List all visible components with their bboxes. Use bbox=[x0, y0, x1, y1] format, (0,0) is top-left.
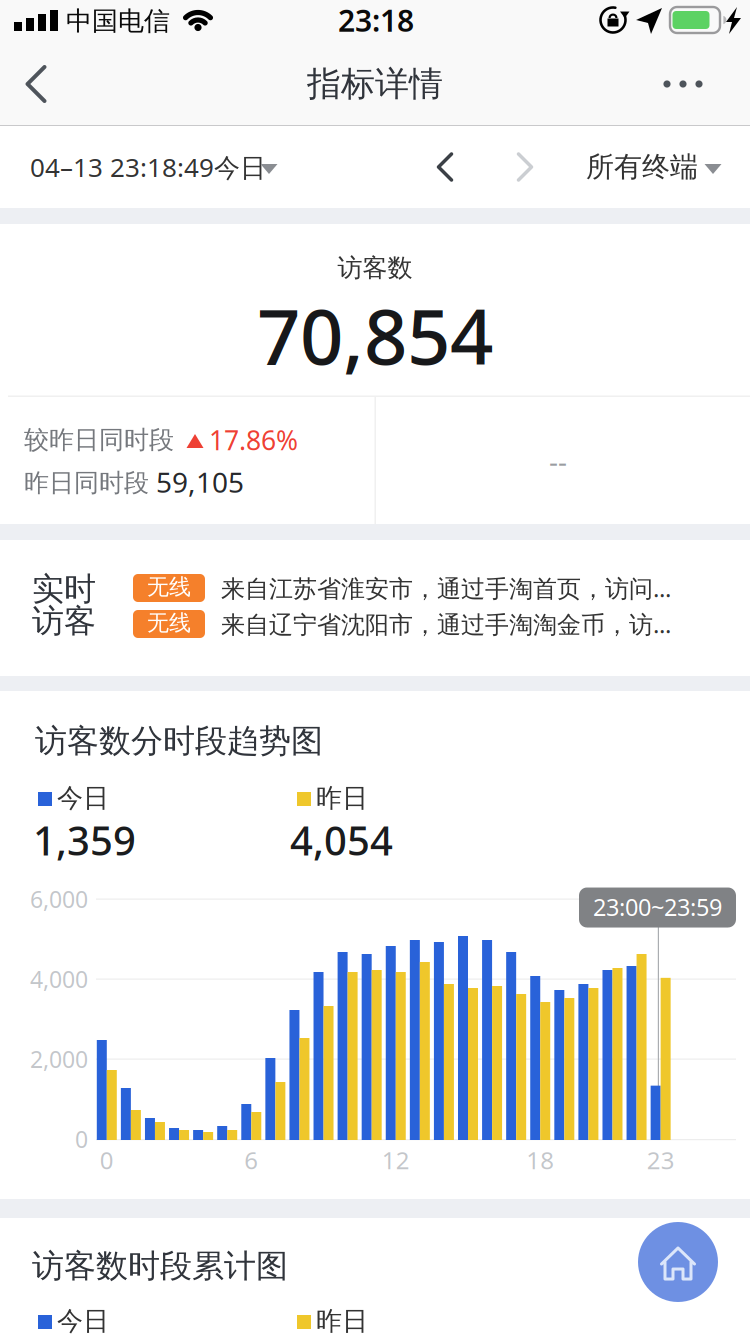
staticText: 23:00~23:59 bbox=[593, 891, 722, 923]
staticText: 今日 bbox=[57, 782, 109, 814]
staticText: 23 bbox=[647, 1144, 675, 1176]
staticText: 今日 bbox=[57, 1305, 109, 1334]
staticText: 23:18 bbox=[338, 0, 414, 40]
staticText: 04–13 23:18:49今日 bbox=[30, 149, 266, 185]
staticText: 访客 bbox=[32, 601, 96, 641]
staticText: 无线 bbox=[147, 573, 191, 601]
staticText: 4,054 bbox=[290, 813, 393, 867]
button[interactable]: 实时访客 2 bbox=[0, 606, 750, 642]
button[interactable]: More bbox=[635, 40, 731, 126]
button[interactable]: 所有终端 bbox=[586, 126, 736, 208]
staticText: 17.86% bbox=[209, 422, 298, 458]
staticText: 6 bbox=[244, 1144, 258, 1176]
button[interactable]: 实时访客 1 bbox=[0, 570, 750, 606]
button[interactable]: 首页 bbox=[638, 1222, 718, 1302]
staticText: 0 bbox=[75, 1123, 88, 1155]
staticText: 较昨日同时段 bbox=[24, 424, 174, 456]
staticText: 4,000 bbox=[30, 963, 88, 995]
button[interactable]: 下一时段 bbox=[495, 126, 555, 208]
staticText: 70,854 bbox=[257, 283, 493, 387]
staticText: 实时 bbox=[32, 569, 96, 609]
staticText: 59,105 bbox=[156, 463, 244, 501]
staticText: 昨日同时段 bbox=[24, 467, 149, 499]
staticText: 0 bbox=[100, 1144, 114, 1176]
staticText: 访客数分时段趋势图 bbox=[35, 721, 323, 761]
button[interactable]: Back bbox=[0, 40, 72, 126]
staticText: 所有终端 bbox=[586, 149, 698, 185]
staticText: 无线 bbox=[147, 609, 191, 637]
staticText: 2,000 bbox=[30, 1043, 88, 1075]
staticText: 昨日 bbox=[316, 1305, 368, 1334]
staticText: 来自辽宁省沈阳市，通过手淘淘金币，访... bbox=[221, 608, 671, 640]
staticText: 1,359 bbox=[33, 813, 136, 867]
staticText: 昨日 bbox=[316, 782, 368, 814]
button[interactable]: 选择日期 bbox=[0, 126, 300, 208]
button[interactable]: 上一时段 bbox=[415, 126, 475, 208]
staticText: 12 bbox=[382, 1144, 410, 1176]
staticText: 访客数时段累计图 bbox=[32, 1246, 288, 1286]
staticText: 中国电信 bbox=[66, 5, 170, 37]
staticText: 6,000 bbox=[30, 883, 88, 915]
staticText: -- bbox=[549, 442, 567, 480]
staticText: 来自江苏省淮安市，通过手淘首页，访问... bbox=[221, 572, 671, 604]
staticText: 访客数 bbox=[337, 252, 412, 284]
staticText: 指标详情 bbox=[307, 63, 443, 105]
staticText: 18 bbox=[526, 1144, 554, 1176]
